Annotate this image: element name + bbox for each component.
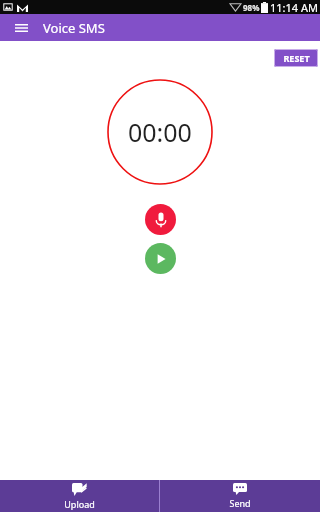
other: Upload recording: [72, 483, 87, 496]
staticText: 11:14 AM: [270, 0, 318, 14]
staticText: RESET: [283, 52, 310, 64]
button[interactable]: Play recording: [145, 243, 176, 274]
staticText: Upload: [64, 498, 95, 510]
button[interactable]: Upload recording: [0, 480, 159, 512]
staticText: 00:00: [128, 115, 192, 149]
button[interactable]: Record voice message: [145, 204, 176, 235]
other: Send message: [233, 483, 247, 495]
button[interactable]: Open navigation menu: [8, 15, 34, 41]
staticText: Send: [229, 497, 251, 509]
button[interactable]: RESET: [274, 49, 318, 67]
staticText: 98%: [243, 2, 260, 13]
button[interactable]: Send message: [160, 480, 320, 512]
staticText: Voice SMS: [43, 19, 105, 37]
